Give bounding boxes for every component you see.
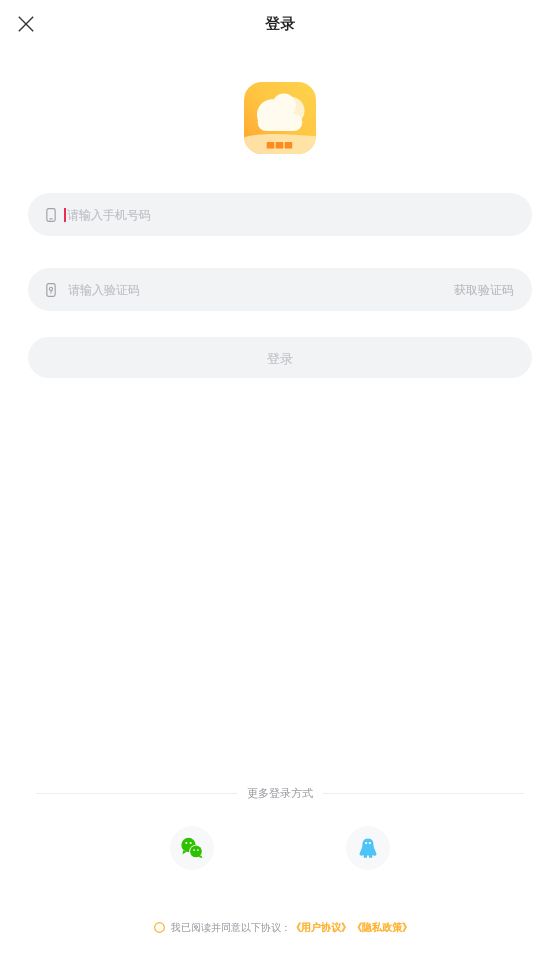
button[interactable]: Close (12, 10, 40, 38)
staticText: 获取验证码 (454, 282, 514, 297)
staticText: 我已阅读并同意以下协议： (171, 921, 291, 934)
button[interactable]: 请输入手机号码 (28, 193, 532, 236)
button[interactable]: WeChat login (170, 826, 214, 870)
staticText: 请输入验证码 (68, 282, 140, 297)
button[interactable]: 请输入验证码 (28, 268, 532, 311)
staticText: 请输入手机号码 (67, 207, 151, 222)
staticText: 《隐私政策》 (352, 921, 412, 934)
staticText: 更多登录方式 (247, 786, 313, 800)
button[interactable]: Agree to terms (149, 917, 169, 937)
staticText: 登录 (267, 350, 293, 366)
button[interactable]: 《用户协议》 (291, 921, 351, 934)
button[interactable]: 登录 (28, 337, 532, 378)
staticText: 《用户协议》 (291, 921, 351, 934)
button[interactable]: 《隐私政策》 (352, 921, 412, 934)
button[interactable]: 获取验证码 (454, 282, 514, 297)
staticText: 登录 (265, 15, 295, 34)
button[interactable]: QQ login (346, 826, 390, 870)
